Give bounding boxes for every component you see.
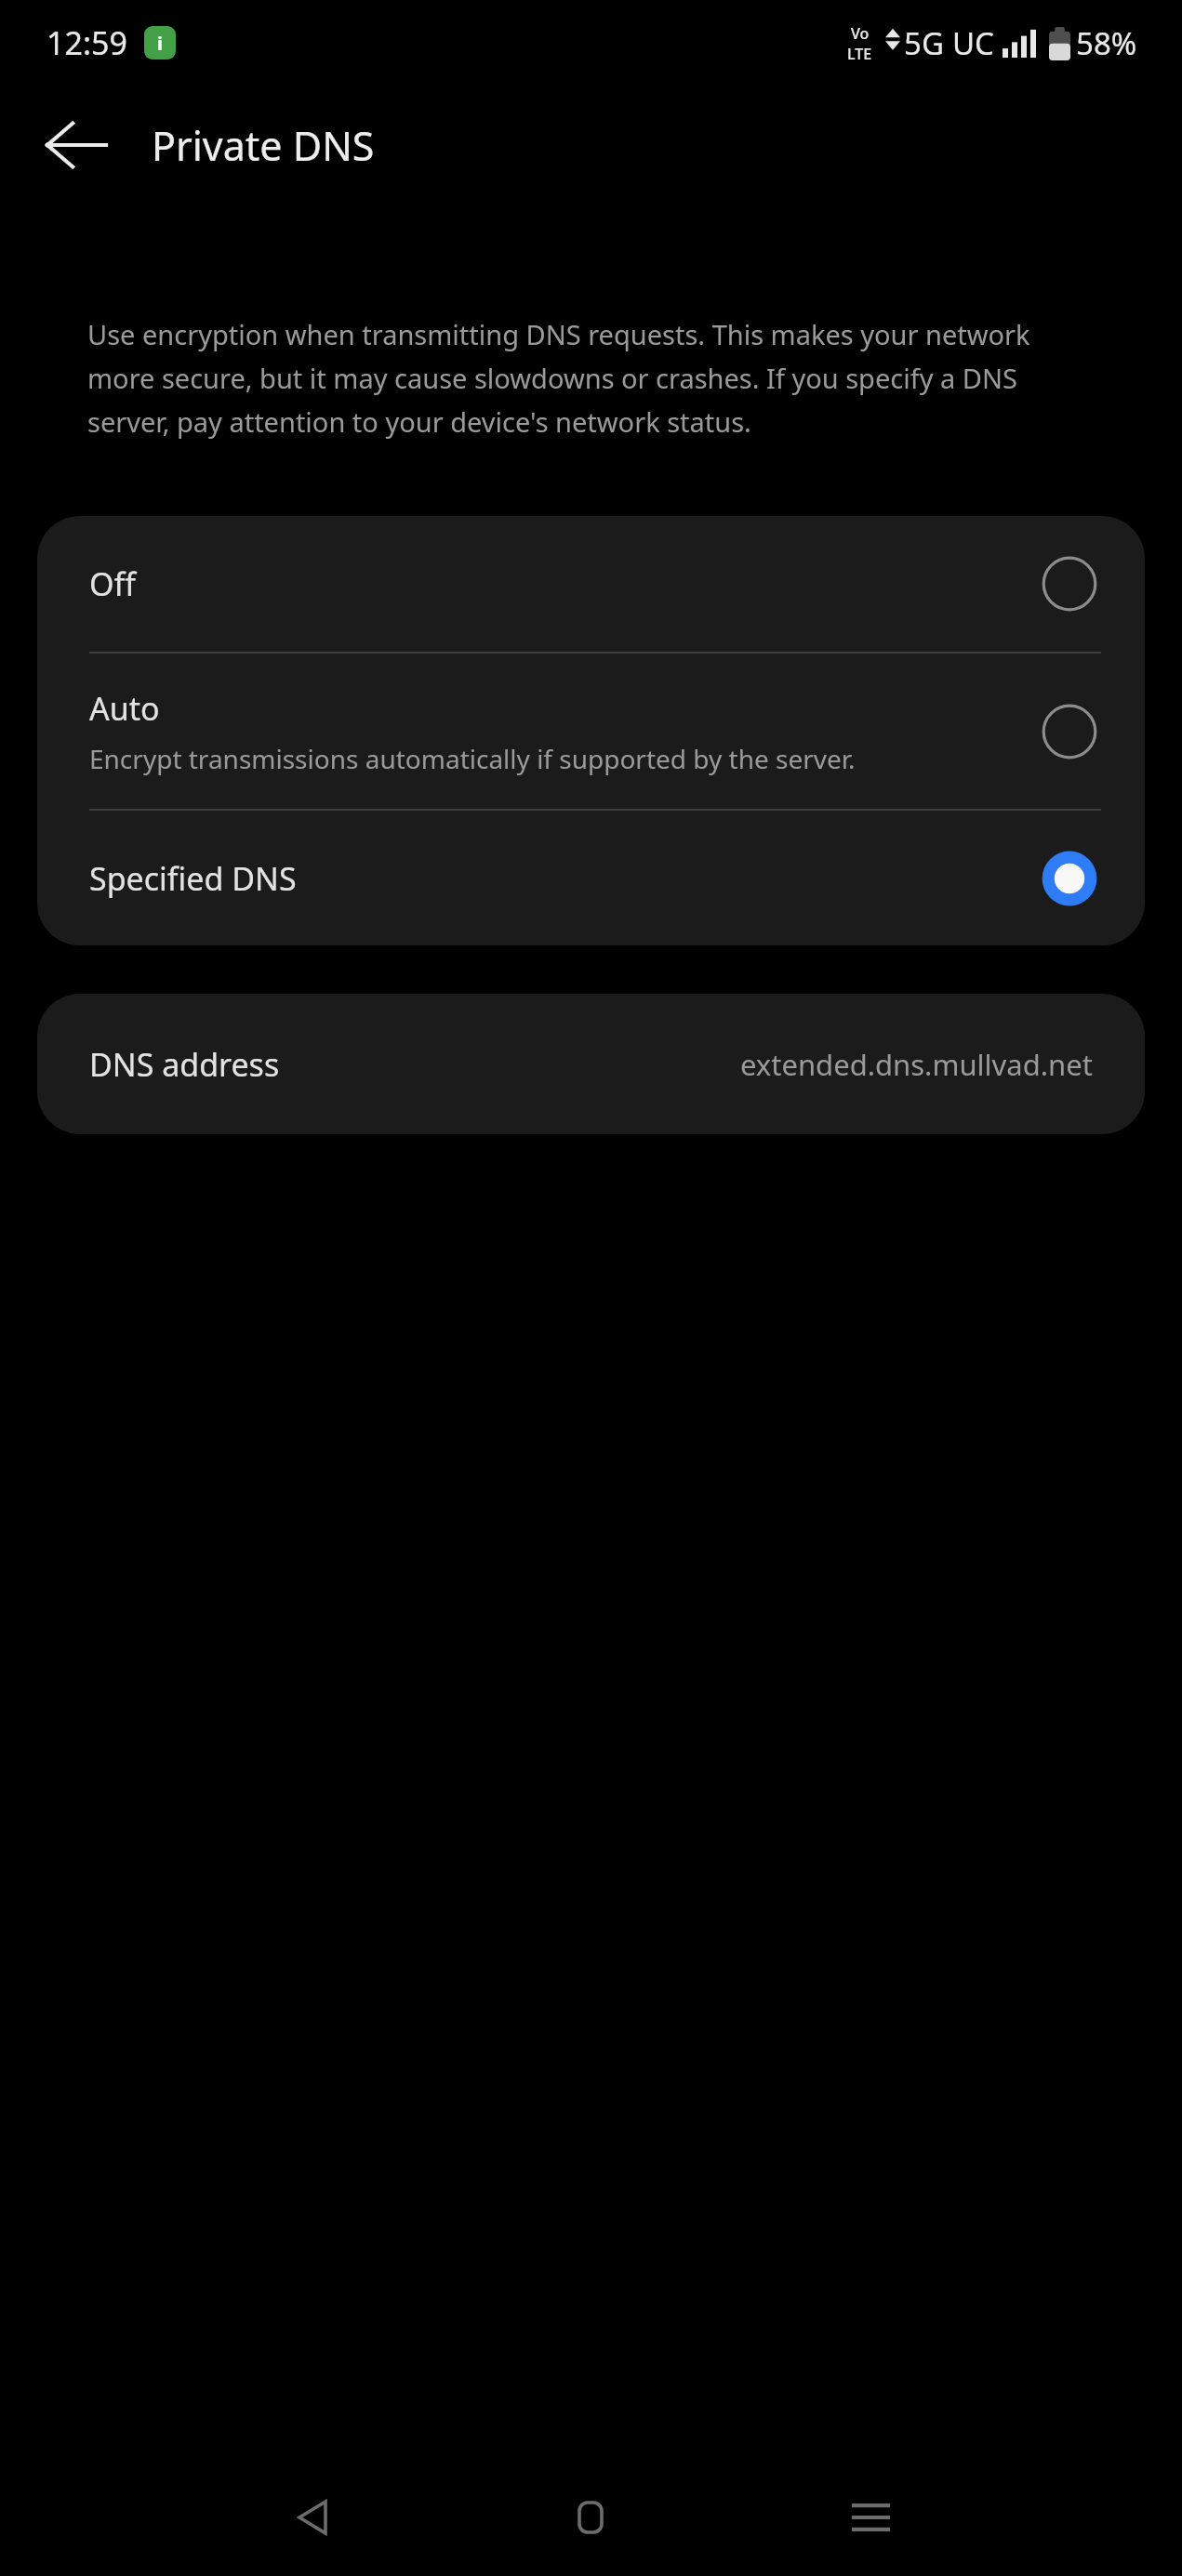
staticText: Encrypt transmissions automatically if s… [89,741,856,776]
button[interactable]: Recent apps [819,2466,922,2569]
staticText: 12:59 [46,21,127,64]
button[interactable]: Back [13,86,139,205]
staticText: 58% [1076,22,1137,64]
staticText: DNS address [89,1043,280,1086]
button[interactable]: Auto [37,654,1145,809]
button[interactable]: DNS address [37,994,1145,1134]
button[interactable]: Back [260,2466,363,2569]
staticText: i [157,31,163,56]
staticText: Use encryption when transmitting DNS req… [87,316,1072,440]
button[interactable]: Off [37,516,1145,652]
staticText: Private DNS [152,118,375,173]
staticText: Specified DNS [89,857,297,900]
button[interactable]: Home [539,2466,642,2569]
staticText: extended.dns.mullvad.net [740,1045,1093,1084]
staticText: UC [952,22,994,64]
button[interactable]: Specified DNS [37,811,1145,945]
staticText: 5G [904,22,944,64]
staticText: Auto [89,687,160,730]
staticText: Off [89,562,136,605]
staticText: Vo [851,23,870,44]
staticText: LTE [847,44,872,64]
